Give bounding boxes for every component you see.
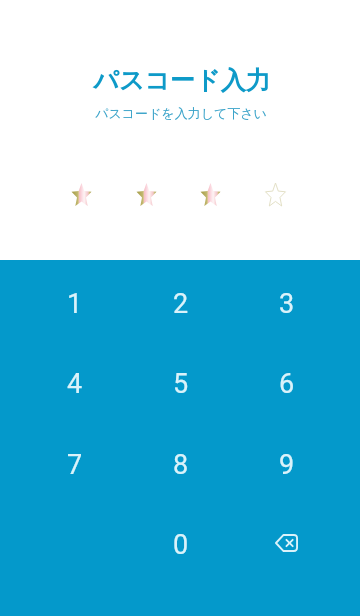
button[interactable]: 0 <box>128 504 234 585</box>
staticText: 1 <box>67 288 83 320</box>
staticText: 2 <box>173 288 189 320</box>
button[interactable]: 9 <box>234 424 340 505</box>
staticText: 4 <box>67 368 83 400</box>
button[interactable]: 7 <box>22 424 128 505</box>
button[interactable]: Delete <box>234 504 340 585</box>
staticText: 7 <box>67 449 83 481</box>
staticText: 8 <box>173 449 189 481</box>
staticText: パスコード入力 <box>2 65 360 96</box>
staticText: 9 <box>279 449 295 481</box>
button[interactable]: 1 <box>22 263 128 344</box>
staticText: パスコードを入力して下さい <box>1 105 360 121</box>
button[interactable]: 2 <box>128 263 234 344</box>
staticText: 3 <box>279 288 295 320</box>
staticText: 6 <box>279 368 295 400</box>
button[interactable]: 5 <box>128 343 234 424</box>
button[interactable]: 4 <box>22 343 128 424</box>
button[interactable]: 6 <box>234 343 340 424</box>
staticText: 5 <box>173 368 189 400</box>
button[interactable]: 3 <box>234 263 340 344</box>
staticText: 0 <box>173 529 189 561</box>
button[interactable]: 8 <box>128 424 234 505</box>
